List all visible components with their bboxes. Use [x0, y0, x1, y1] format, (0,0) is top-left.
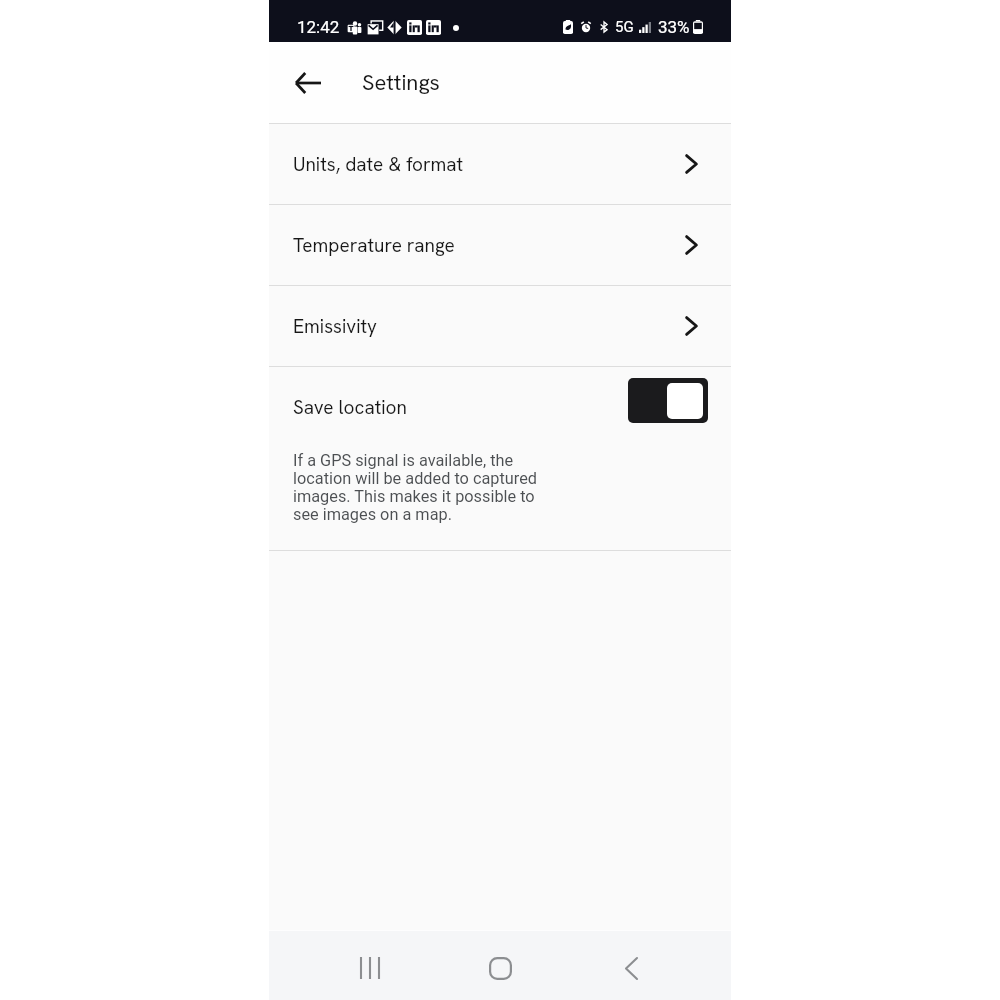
button[interactable]: Save location	[269, 367, 731, 550]
staticText: Emissivity	[293, 314, 377, 339]
staticText: 33%	[658, 17, 690, 37]
button[interactable]: Home	[470, 938, 530, 998]
button[interactable]: Temperature range	[269, 205, 731, 285]
button[interactable]: Recent apps	[340, 938, 400, 998]
staticText: 12:42	[297, 17, 340, 37]
staticText: Save location	[293, 395, 407, 420]
button[interactable]: Back	[280, 55, 336, 111]
staticText: Units, date & format	[293, 152, 464, 177]
button[interactable]: Back	[601, 938, 661, 998]
button[interactable]: Units, date & format	[269, 124, 731, 204]
staticText: If a GPS signal is available, the locati…	[293, 451, 537, 524]
staticText: 5G	[615, 18, 634, 36]
button[interactable]: Emissivity	[269, 286, 731, 366]
staticText: Settings	[362, 68, 440, 97]
staticText: Temperature range	[293, 233, 455, 258]
